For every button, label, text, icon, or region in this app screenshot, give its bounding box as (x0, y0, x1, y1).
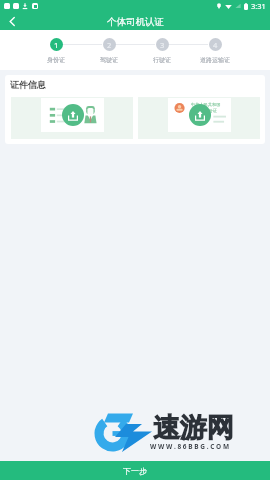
button[interactable]: Upload ID card back (138, 97, 260, 139)
staticText: 4 (213, 40, 218, 50)
staticText: 3 (160, 40, 165, 50)
staticText: 驾驶证 (100, 56, 118, 64)
staticText: 速游网 (153, 411, 234, 445)
staticText: 2 (107, 40, 112, 50)
staticText: 行驶证 (153, 56, 171, 64)
button[interactable]: Back (0, 12, 24, 31)
staticText: W W W . 8 6 B B G . C O M (150, 442, 230, 451)
staticText: 下一步 (123, 466, 147, 476)
staticText: 证件信息 (10, 79, 46, 90)
staticText: 中华人民共和国 (191, 102, 221, 107)
staticText: 1 (54, 40, 59, 50)
staticText: 道路运输证 (200, 56, 230, 64)
staticText: 身份证 (47, 56, 65, 64)
button[interactable]: Upload ID card front (11, 97, 133, 139)
button[interactable]: 下一步 (0, 461, 270, 480)
staticText: 个体司机认证 (107, 16, 164, 28)
staticText: 居民身份证 (196, 108, 217, 113)
staticText: 3:31 (251, 1, 266, 11)
